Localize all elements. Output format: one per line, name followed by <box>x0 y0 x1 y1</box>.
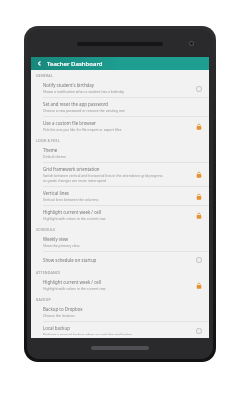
button[interactable]: Vertical lines <box>31 187 209 206</box>
staticText: Backup to Dropbox <box>43 306 83 312</box>
staticText: GENERAL <box>36 73 53 78</box>
staticText: Choose the location <box>43 313 75 318</box>
staticText: Use a custom file browser <box>43 120 97 126</box>
staticText: Show the primary class <box>43 243 80 248</box>
staticText: Teacher Dashboard <box>47 60 103 68</box>
staticText: Weekly view <box>43 236 69 242</box>
staticText: Highlight current week / cell <box>43 209 101 215</box>
staticText: Notify student's birthday <box>43 82 95 88</box>
button[interactable]: Show schedule on startup <box>31 252 209 267</box>
button[interactable]: Locked setting <box>194 170 203 179</box>
button[interactable]: Highlight current week / cell <box>31 276 209 294</box>
staticText: Choose a new password or remove the exis… <box>43 108 125 113</box>
staticText: Perform a manual backup when you exit th… <box>43 332 132 335</box>
button[interactable]: Locked setting <box>194 281 203 290</box>
staticText: Default theme <box>43 154 66 159</box>
staticText: SCHEDULE <box>36 227 56 232</box>
button[interactable]: Use a custom file browser <box>31 117 209 135</box>
staticText: Switch between vertical and horizontal l… <box>43 173 163 178</box>
staticText: Local backup <box>43 325 70 331</box>
staticText: ATTENDANCE <box>36 270 61 275</box>
staticText: BACKUP <box>36 297 51 302</box>
button[interactable]: Set and reset the app password <box>31 98 209 117</box>
button[interactable]: Toggle option <box>194 326 203 335</box>
staticText: Show schedule on startup <box>43 257 97 263</box>
staticText: Highlight current week / cell <box>43 279 101 285</box>
button[interactable]: Locked setting <box>194 192 203 201</box>
staticText: Grid framework orientation <box>43 166 100 172</box>
button[interactable]: Weekly view <box>31 233 209 252</box>
staticText: Vertical lines <box>43 190 69 196</box>
staticText: Vertical lines between the columns <box>43 197 99 202</box>
button[interactable]: Local backup <box>31 322 209 338</box>
staticText: Set and reset the app password <box>43 101 108 107</box>
staticText: so grade changes are never interrupted <box>43 178 107 183</box>
staticText: Highlight with colors in the current row <box>43 286 106 291</box>
staticText: Highlight with colors in the current row <box>43 216 106 221</box>
staticText: LOOK & FEEL <box>36 138 60 143</box>
button[interactable]: Locked setting <box>194 122 203 131</box>
staticText: Shows a notification when a student has … <box>43 89 125 94</box>
staticText: Theme <box>43 147 58 153</box>
button[interactable]: Backup to Dropbox <box>31 303 209 322</box>
button[interactable]: Locked setting <box>194 211 203 220</box>
button[interactable]: Toggle option <box>194 255 203 264</box>
button[interactable]: Notify student's birthday <box>31 79 209 98</box>
button[interactable]: Theme <box>31 144 209 163</box>
button[interactable]: Highlight current week / cell <box>31 206 209 224</box>
button[interactable]: Toggle option <box>194 84 203 93</box>
button[interactable]: Navigate up <box>35 59 44 68</box>
staticText: Pick the one you like for file import or… <box>43 127 122 132</box>
button[interactable]: Grid framework orientation <box>31 163 209 187</box>
